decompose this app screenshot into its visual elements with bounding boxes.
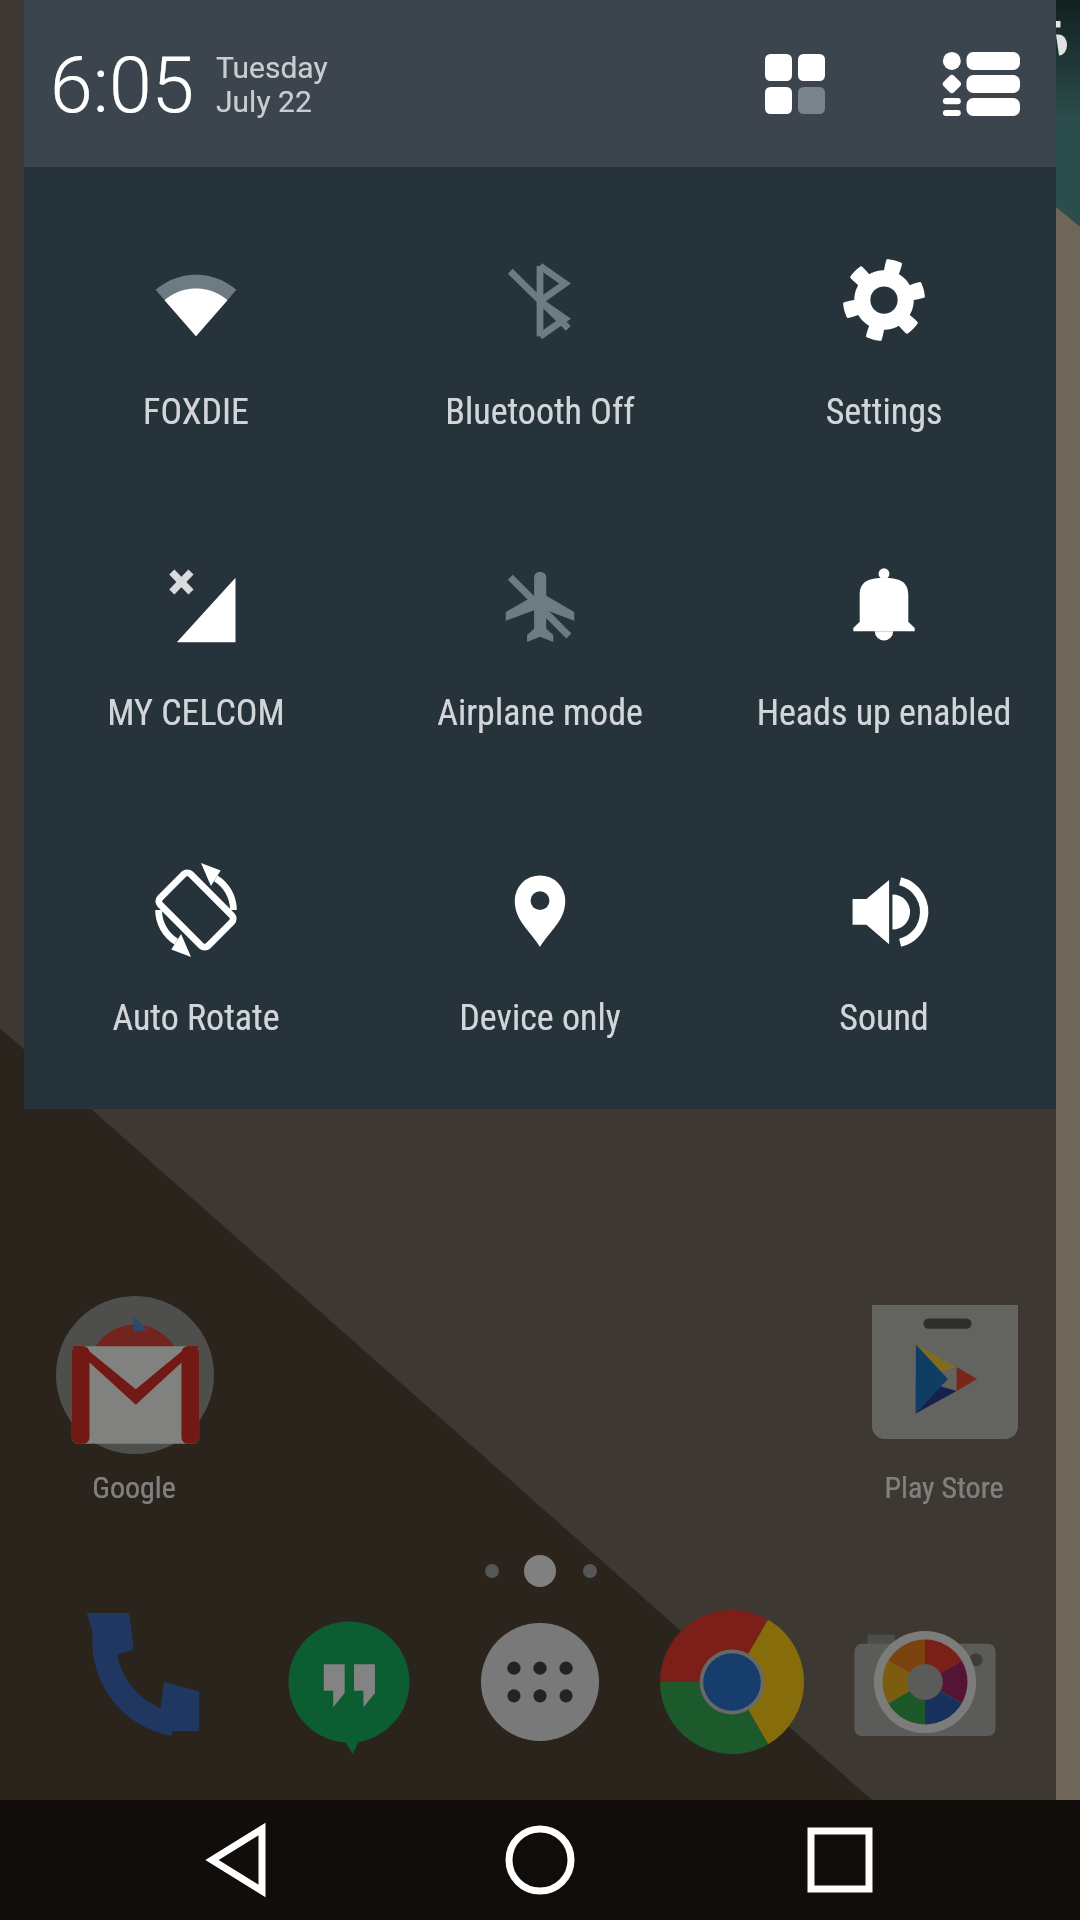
button[interactable]: Settings bbox=[712, 248, 1056, 408]
button[interactable]: Airplane mode bbox=[368, 547, 712, 707]
staticText: Heads up enabled bbox=[712, 692, 1056, 734]
button[interactable]: Google folder bbox=[56, 1296, 214, 1454]
staticText: Tuesday bbox=[216, 50, 328, 85]
button[interactable]: Play Store bbox=[872, 1305, 1018, 1439]
staticText: MY CELCOM bbox=[24, 692, 368, 734]
button[interactable]: All apps bbox=[468, 1610, 612, 1754]
staticText: Auto Rotate bbox=[24, 997, 368, 1039]
staticText: Sound bbox=[712, 997, 1056, 1039]
button[interactable]: Auto Rotate bbox=[24, 852, 368, 1012]
button[interactable]: Heads up enabled bbox=[712, 547, 1056, 707]
staticText: Device only bbox=[368, 997, 712, 1039]
staticText: Settings bbox=[712, 391, 1056, 433]
button[interactable]: Recents bbox=[780, 1800, 900, 1920]
staticText: Google bbox=[44, 1470, 224, 1505]
button[interactable]: FOXDIE bbox=[24, 248, 368, 408]
button[interactable]: MY CELCOM bbox=[24, 547, 368, 707]
staticText: FOXDIE bbox=[24, 391, 368, 433]
button[interactable]: Hangouts bbox=[277, 1610, 421, 1754]
button[interactable]: Sound bbox=[712, 852, 1056, 1012]
button[interactable]: Notifications bbox=[915, 18, 1047, 150]
staticText: Bluetooth Off bbox=[368, 391, 712, 433]
button[interactable]: Back bbox=[180, 1800, 300, 1920]
button[interactable]: Phone bbox=[84, 1610, 228, 1754]
button[interactable]: Home bbox=[480, 1800, 600, 1920]
button[interactable]: Quick settings bbox=[729, 18, 861, 150]
button[interactable]: Chrome bbox=[660, 1610, 804, 1754]
staticText: Airplane mode bbox=[368, 692, 712, 734]
button[interactable]: Device only bbox=[368, 852, 712, 1012]
button[interactable]: Bluetooth Off bbox=[368, 248, 712, 408]
button[interactable]: Camera bbox=[853, 1610, 997, 1754]
staticText: Play Store bbox=[854, 1470, 1034, 1505]
staticText: July 22 bbox=[216, 84, 312, 119]
staticText: 6:05 bbox=[50, 41, 195, 131]
